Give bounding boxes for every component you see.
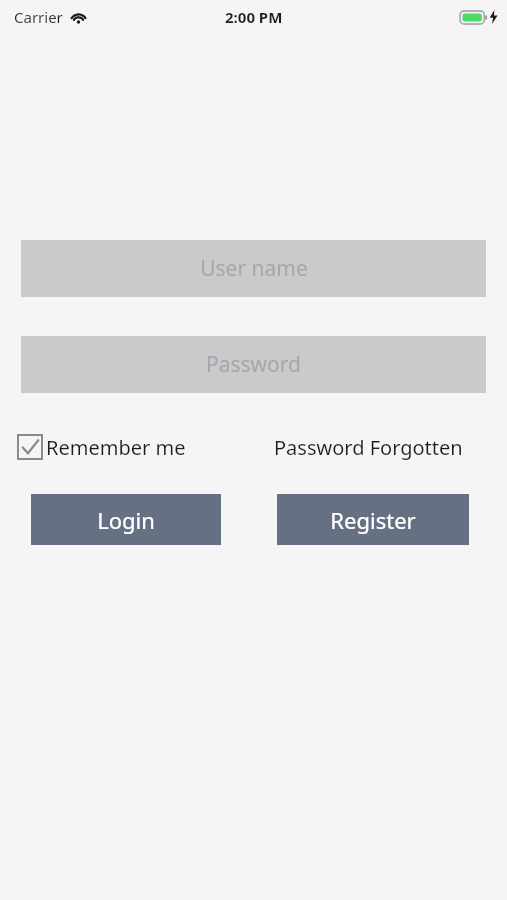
- staticText: User name: [200, 254, 308, 283]
- button[interactable]: Password Forgotten: [274, 432, 463, 462]
- button[interactable]: Password: [21, 336, 486, 393]
- button[interactable]: Register: [277, 494, 469, 545]
- staticText: Login: [97, 505, 155, 535]
- button[interactable]: Login: [31, 494, 221, 545]
- button[interactable]: Remember me: [17, 432, 186, 462]
- other: Charging: [489, 10, 498, 24]
- other: Battery full: [460, 11, 487, 24]
- staticText: Register: [330, 505, 416, 535]
- other: Wi-Fi signal: [70, 11, 87, 24]
- staticText: Remember me: [46, 434, 186, 461]
- staticText: Carrier: [14, 7, 63, 27]
- staticText: Password Forgotten: [274, 434, 463, 461]
- staticText: 2:00 PM: [225, 7, 283, 27]
- staticText: Password: [206, 350, 301, 379]
- button[interactable]: User name: [21, 240, 486, 297]
